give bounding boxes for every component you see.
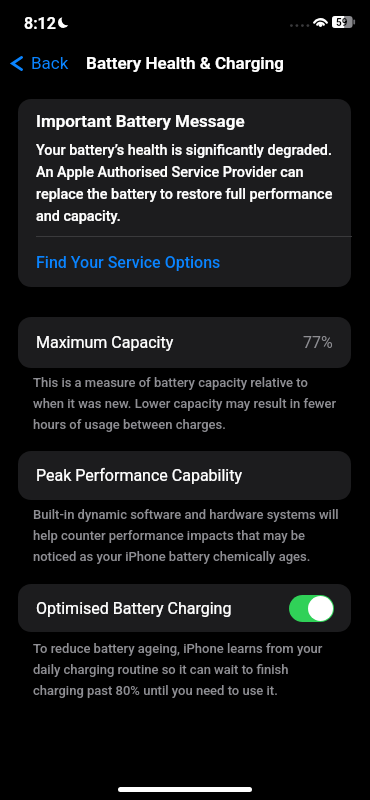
button[interactable]: Peak Performance Capability xyxy=(18,451,351,500)
staticText: 59 xyxy=(336,16,348,28)
staticText: This is a measure of battery capacity re… xyxy=(33,370,339,433)
staticText: To reduce battery ageing, iPhone learns … xyxy=(33,636,339,699)
staticText: Important Battery Message xyxy=(36,111,245,131)
staticText: Peak Performance Capability xyxy=(36,466,243,485)
staticText: Back xyxy=(31,53,69,73)
staticText: Find Your Service Options xyxy=(36,253,221,272)
staticText: Battery Health & Charging xyxy=(86,53,284,73)
staticText: Optimised Battery Charging xyxy=(36,599,232,618)
staticText: 77% xyxy=(303,333,333,352)
button[interactable] xyxy=(18,237,351,286)
button[interactable]: Optimised Battery Charging xyxy=(289,595,334,622)
staticText: Built-in dynamic software and hardware s… xyxy=(33,502,339,565)
staticText: Maximum Capacity xyxy=(36,333,174,352)
staticText: 8:12 xyxy=(24,14,56,33)
button[interactable]: Maximum Capacity xyxy=(18,317,351,368)
staticText: Your battery’s health is significantly d… xyxy=(36,138,338,226)
button[interactable]: Optimised Battery Charging xyxy=(18,584,351,632)
button[interactable]: Back xyxy=(7,48,77,78)
